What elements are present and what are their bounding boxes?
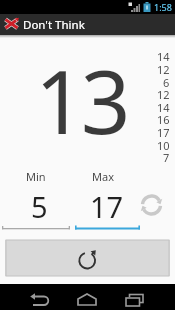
staticText: Min bbox=[26, 169, 46, 183]
staticText: 10 bbox=[157, 138, 170, 151]
staticText: 7 bbox=[163, 150, 170, 163]
staticText: 13 bbox=[35, 41, 127, 159]
button[interactable] bbox=[123, 290, 144, 308]
staticText: 17 bbox=[90, 187, 124, 226]
staticText: 5 bbox=[31, 187, 48, 226]
staticText: 17 bbox=[157, 125, 170, 138]
staticText: 12 bbox=[157, 87, 170, 100]
button[interactable] bbox=[5, 192, 70, 232]
button[interactable] bbox=[77, 290, 97, 308]
staticText: 14 bbox=[157, 49, 170, 62]
staticText: 14 bbox=[157, 100, 170, 113]
button[interactable] bbox=[0, 14, 175, 35]
staticText: 1:58 bbox=[154, 1, 172, 13]
staticText: 12 bbox=[157, 62, 170, 75]
button[interactable] bbox=[138, 191, 165, 219]
staticText: 6 bbox=[163, 75, 170, 88]
staticText: 16 bbox=[157, 112, 170, 125]
button[interactable] bbox=[5, 240, 170, 276]
button[interactable] bbox=[75, 192, 140, 232]
staticText: Don't Think bbox=[23, 17, 85, 33]
staticText: Max bbox=[92, 169, 114, 183]
button[interactable] bbox=[29, 290, 51, 308]
